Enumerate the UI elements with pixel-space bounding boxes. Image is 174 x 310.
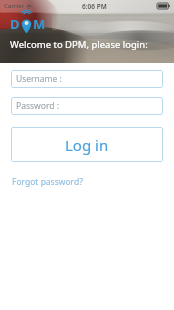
staticText: 6:06 PM — [82, 2, 107, 11]
button[interactable]: Password : — [11, 97, 163, 115]
button[interactable]: Log in — [11, 127, 163, 162]
staticText: Log in — [65, 135, 109, 155]
staticText: Welcome to DPM, please login: — [10, 38, 148, 51]
other: DPM logo — [10, 13, 48, 34]
button[interactable]: Username : — [11, 70, 163, 88]
staticText: D — [10, 15, 20, 33]
staticText: Forgot password? — [12, 176, 83, 188]
staticText: Carrier — [4, 2, 24, 10]
staticText: Password : — [16, 100, 59, 112]
button[interactable]: Forgot password? — [11, 175, 84, 189]
staticText: Username : — [16, 73, 62, 85]
staticText: M — [33, 15, 46, 33]
